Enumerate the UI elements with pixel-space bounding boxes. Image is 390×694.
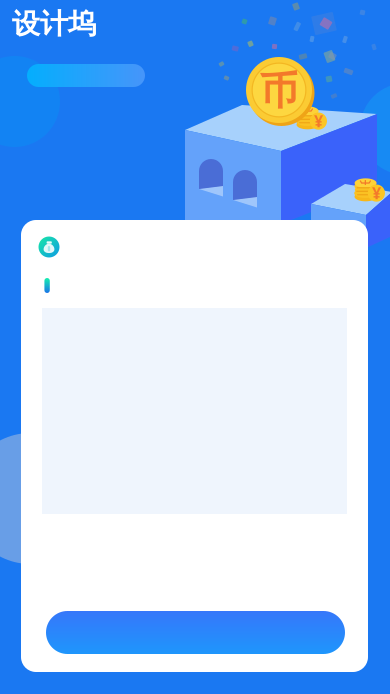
staticText: 设计坞 xyxy=(12,7,96,41)
staticText: ¥ xyxy=(314,110,323,132)
staticText: ¥ xyxy=(372,182,381,204)
staticText: 币 xyxy=(259,67,298,115)
button[interactable] xyxy=(46,611,345,654)
